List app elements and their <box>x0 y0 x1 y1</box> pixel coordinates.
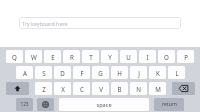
button[interactable]: 123 <box>16 98 33 111</box>
staticText: G <box>98 69 103 77</box>
button[interactable]: X <box>54 82 71 95</box>
staticText: A <box>23 69 27 77</box>
button[interactable]: Z <box>35 82 52 95</box>
staticText: R <box>70 53 74 61</box>
button[interactable]: L <box>168 66 185 79</box>
staticText: U <box>126 53 131 61</box>
button[interactable]: Switch keyboard <box>37 98 54 111</box>
button[interactable]: K <box>149 66 166 79</box>
button[interactable]: J <box>130 66 147 79</box>
button[interactable]: return <box>154 98 184 111</box>
button[interactable]: F <box>73 66 90 79</box>
staticText: I <box>146 53 149 61</box>
button[interactable]: O <box>158 50 175 63</box>
button[interactable]: E <box>44 50 61 63</box>
staticText: V <box>99 85 103 93</box>
staticText: J <box>138 69 140 77</box>
button[interactable]: H <box>111 66 128 79</box>
button[interactable]: U <box>120 50 137 63</box>
button[interactable]: R <box>63 50 80 63</box>
button[interactable]: space <box>59 98 149 111</box>
staticText: return <box>162 101 177 108</box>
staticText: N <box>136 85 141 93</box>
staticText: Z <box>42 85 46 93</box>
button[interactable]: W <box>25 50 42 63</box>
button[interactable]: Y <box>101 50 118 63</box>
staticText: D <box>60 69 65 77</box>
button[interactable]: Backspace <box>172 82 195 95</box>
button[interactable]: D <box>54 66 71 79</box>
button[interactable]: S <box>35 66 52 79</box>
staticText: X <box>61 85 65 93</box>
button[interactable]: T <box>82 50 99 63</box>
button[interactable]: P <box>177 50 194 63</box>
staticText: Q <box>12 53 17 61</box>
staticText: H <box>117 69 122 77</box>
button[interactable]: G <box>92 66 109 79</box>
button[interactable]: N <box>130 82 147 95</box>
staticText: M <box>155 85 161 93</box>
button[interactable]: Q <box>6 50 23 63</box>
staticText: F <box>80 69 84 77</box>
staticText: K <box>156 69 160 77</box>
button[interactable]: A <box>16 66 33 79</box>
staticText: T <box>89 53 93 61</box>
staticText: C <box>80 85 84 93</box>
staticText: Try keyboard here <box>22 20 68 27</box>
staticText: O <box>164 53 169 61</box>
button[interactable]: I <box>139 50 156 63</box>
staticText: E <box>51 53 55 61</box>
staticText: W <box>31 53 37 61</box>
button[interactable]: Try keyboard here <box>19 17 181 29</box>
button[interactable]: M <box>149 82 166 95</box>
button[interactable]: B <box>111 82 128 95</box>
staticText: Y <box>108 53 112 61</box>
button[interactable]: C <box>73 82 90 95</box>
staticText: L <box>175 69 179 77</box>
staticText: P <box>184 53 188 61</box>
staticText: space <box>96 101 112 109</box>
staticText: B <box>117 85 122 93</box>
button[interactable]: V <box>92 82 109 95</box>
staticText: 123 <box>20 101 29 108</box>
staticText: S <box>42 69 46 77</box>
button[interactable]: Shift <box>6 82 29 95</box>
